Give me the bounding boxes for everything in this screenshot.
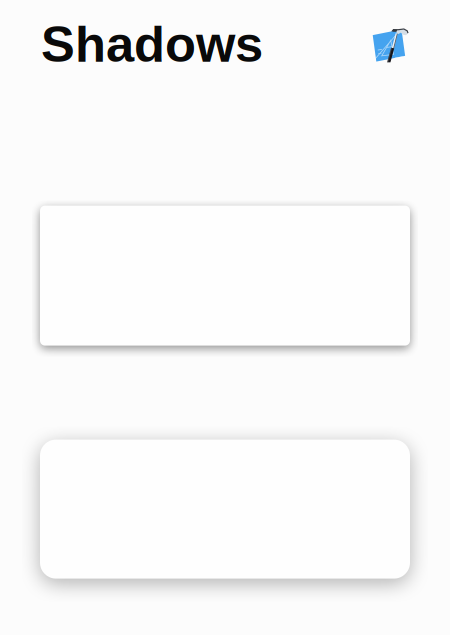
button[interactable]: Xcode: [372, 26, 408, 62]
staticText: Shadows: [41, 16, 263, 73]
